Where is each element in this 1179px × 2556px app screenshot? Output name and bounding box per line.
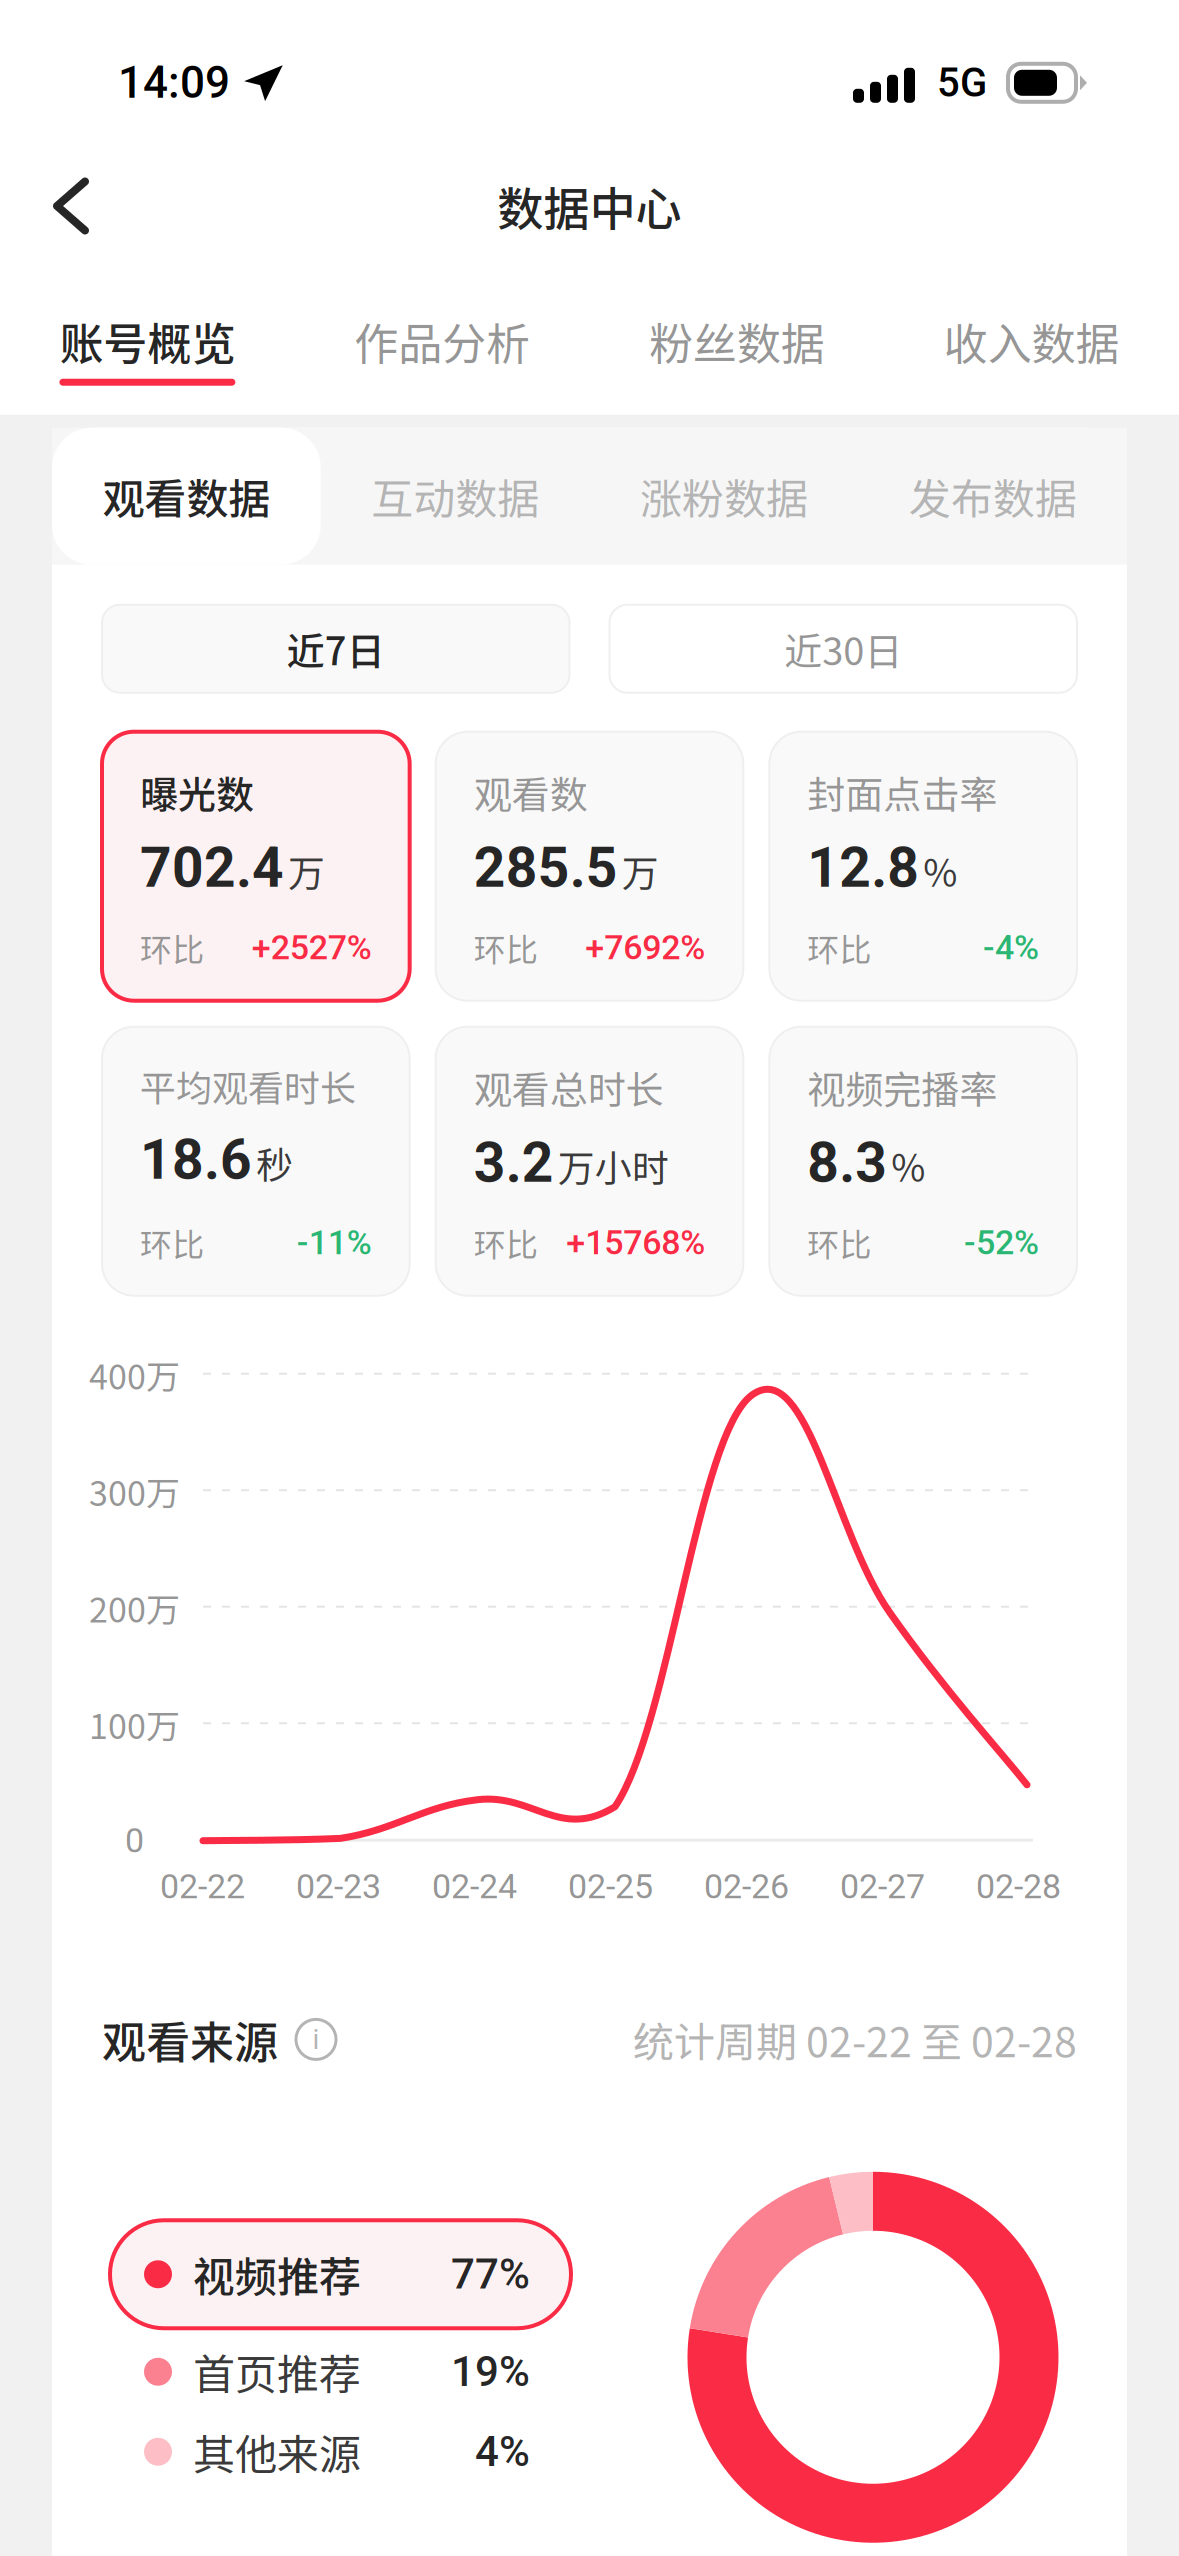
staticText: 0 bbox=[125, 1821, 144, 1861]
staticText: 19% bbox=[451, 2347, 530, 2396]
staticText: 首页推荐 bbox=[193, 2341, 361, 2402]
staticText: 18.6 bbox=[140, 1128, 252, 1192]
staticText: 万 bbox=[288, 844, 325, 897]
staticText: 77% bbox=[451, 2250, 530, 2299]
button[interactable]: 观看数 bbox=[436, 732, 743, 1001]
staticText: % bbox=[891, 1139, 925, 1192]
button[interactable]: 互动数据 bbox=[321, 428, 590, 565]
staticText: 作品分析 bbox=[354, 309, 530, 373]
staticText: 12.8 bbox=[807, 836, 919, 900]
staticText: 环比 bbox=[807, 1219, 871, 1266]
staticText: 视频推荐 bbox=[193, 2244, 361, 2305]
staticText: 收入数据 bbox=[944, 309, 1120, 373]
staticText: i bbox=[312, 2023, 319, 2056]
staticText: 300万 bbox=[89, 1467, 180, 1516]
staticText: 其他来源 bbox=[193, 2421, 361, 2482]
button[interactable]: 观看数据 bbox=[52, 428, 321, 565]
staticText: 8.3 bbox=[807, 1131, 887, 1195]
staticText: 285.5 bbox=[474, 836, 618, 900]
staticText: 账号概览 bbox=[59, 309, 235, 373]
button[interactable]: 曝光数 bbox=[102, 732, 410, 1001]
staticText: 400万 bbox=[89, 1350, 180, 1399]
staticText: -11% bbox=[297, 1223, 372, 1262]
staticText: 4% bbox=[475, 2427, 530, 2476]
staticText: 14:09 bbox=[118, 57, 230, 109]
staticText: +15768% bbox=[566, 1223, 705, 1262]
staticText: 200万 bbox=[89, 1583, 180, 1632]
staticText: 曝光数 bbox=[140, 765, 254, 820]
staticText: +2527% bbox=[252, 928, 372, 967]
staticText: 02-24 bbox=[432, 1867, 517, 1906]
button[interactable]: 观看总时长 bbox=[436, 1027, 743, 1296]
staticText: 万小时 bbox=[558, 1139, 669, 1192]
staticText: 观看数据 bbox=[102, 466, 270, 527]
staticText: 观看来源 bbox=[102, 2008, 278, 2071]
button[interactable]: 账号概览 bbox=[0, 309, 295, 386]
button[interactable]: 收入数据 bbox=[884, 309, 1179, 386]
staticText: 平均观看时长 bbox=[140, 1060, 356, 1112]
button[interactable]: 粉丝数据 bbox=[589, 309, 884, 386]
button[interactable]: 作品分析 bbox=[295, 309, 590, 386]
staticText: 环比 bbox=[474, 924, 538, 971]
button[interactable]: 平均观看时长 bbox=[102, 1027, 410, 1296]
staticText: 秒 bbox=[256, 1136, 293, 1189]
button[interactable]: 首页推荐 bbox=[110, 2318, 571, 2426]
staticText: 观看数 bbox=[474, 765, 588, 820]
staticText: 数据中心 bbox=[497, 173, 681, 239]
staticText: 粉丝数据 bbox=[649, 309, 825, 373]
staticText: 封面点击率 bbox=[807, 765, 997, 820]
staticText: 02-27 bbox=[840, 1867, 925, 1906]
staticText: 100万 bbox=[89, 1700, 180, 1749]
staticText: 涨粉数据 bbox=[640, 466, 808, 527]
staticText: 5G bbox=[937, 59, 987, 106]
button[interactable]: 近7日 bbox=[102, 605, 569, 693]
button[interactable]: 返回 bbox=[0, 153, 119, 258]
staticText: +7692% bbox=[585, 928, 705, 967]
staticText: -4% bbox=[983, 928, 1039, 967]
button[interactable]: 视频完播率 bbox=[769, 1027, 1077, 1296]
button[interactable]: 发布数据 bbox=[858, 428, 1127, 565]
staticText: 3.2 bbox=[474, 1131, 554, 1195]
button[interactable]: 封面点击率 bbox=[769, 732, 1077, 1001]
staticText: 近7日 bbox=[287, 621, 385, 676]
staticText: 02-23 bbox=[296, 1867, 381, 1906]
staticText: 万 bbox=[622, 844, 659, 897]
staticText: 环比 bbox=[140, 1219, 204, 1266]
staticText: 互动数据 bbox=[371, 466, 539, 527]
button[interactable]: 近30日 bbox=[609, 605, 1077, 693]
button[interactable]: 视频推荐 bbox=[110, 2220, 571, 2328]
staticText: 02-28 bbox=[976, 1867, 1061, 1906]
staticText: 环比 bbox=[807, 924, 871, 971]
staticText: 近30日 bbox=[784, 621, 902, 676]
staticText: 02-22 bbox=[160, 1867, 245, 1906]
staticText: -52% bbox=[964, 1223, 1039, 1262]
staticText: 观看总时长 bbox=[474, 1060, 664, 1115]
staticText: 环比 bbox=[474, 1219, 538, 1266]
staticText: % bbox=[923, 844, 957, 897]
staticText: 发布数据 bbox=[909, 466, 1077, 527]
staticText: 视频完播率 bbox=[807, 1060, 997, 1115]
staticText: 02-25 bbox=[568, 1867, 653, 1906]
staticText: 环比 bbox=[140, 924, 204, 971]
staticText: 02-26 bbox=[704, 1867, 789, 1906]
button[interactable]: 其他来源 bbox=[110, 2398, 571, 2506]
staticText: 702.4 bbox=[140, 836, 284, 900]
staticText: 统计周期 02-22 至 02-28 bbox=[633, 2010, 1077, 2069]
button[interactable]: 涨粉数据 bbox=[589, 428, 858, 565]
